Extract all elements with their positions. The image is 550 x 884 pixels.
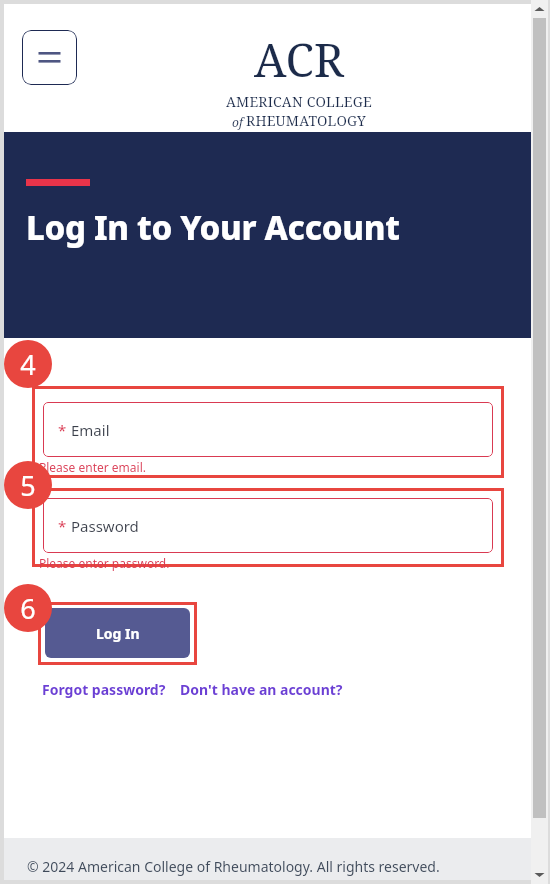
staticText: 5 xyxy=(20,467,36,504)
staticText: RHEUMATOLOGY xyxy=(246,111,366,130)
staticText: * xyxy=(58,516,71,536)
staticText: 4 xyxy=(20,346,36,383)
staticText: Please enter email. xyxy=(39,459,146,475)
staticText: 6 xyxy=(20,590,36,627)
staticText: Email xyxy=(71,420,110,440)
staticText: © 2024 American College of Rheumatology.… xyxy=(27,857,440,876)
staticText: ACR xyxy=(254,28,344,91)
staticText: Log In xyxy=(96,624,140,643)
button[interactable]: Open navigation menu xyxy=(22,30,77,85)
button[interactable]: Log In xyxy=(45,608,190,658)
button[interactable]: * xyxy=(43,498,493,553)
staticText: of xyxy=(232,114,246,130)
button[interactable]: Forgot password? xyxy=(42,680,166,699)
staticText: Please enter password. xyxy=(39,555,170,571)
staticText: Password xyxy=(71,516,139,536)
staticText: AMERICAN COLLEGE xyxy=(226,92,372,111)
staticText: Forgot password? xyxy=(42,680,166,699)
staticText: * xyxy=(58,420,71,440)
staticText: Don't have an account? xyxy=(180,680,343,699)
button[interactable]: Don't have an account? xyxy=(180,680,343,699)
staticText: Log In to Your Account xyxy=(26,205,400,250)
button[interactable]: * xyxy=(43,402,493,457)
